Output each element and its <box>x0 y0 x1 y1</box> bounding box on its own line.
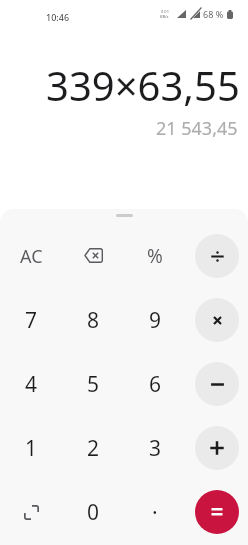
button[interactable]: 4 <box>0 352 62 416</box>
staticText: · <box>152 498 158 527</box>
button[interactable]: % <box>124 224 186 288</box>
button[interactable]: 7 <box>0 288 62 352</box>
button[interactable]: 6 <box>124 352 186 416</box>
button[interactable]: 3 <box>124 416 186 480</box>
button[interactable]: 8 <box>62 288 124 352</box>
staticText: 2 <box>87 434 100 463</box>
staticText: 68 % <box>203 8 224 20</box>
staticText: 8 <box>87 306 100 335</box>
button[interactable]: 9 <box>124 288 186 352</box>
button[interactable]: Backspace <box>62 224 124 288</box>
button[interactable]: Plus <box>195 426 239 470</box>
button[interactable]: 5 <box>62 352 124 416</box>
staticText: KB/s <box>160 14 169 19</box>
staticText: 9 <box>149 306 162 335</box>
staticText: 0.01 <box>161 9 169 14</box>
button[interactable]: 2 <box>62 416 124 480</box>
button[interactable]: Expand <box>0 480 62 544</box>
staticText: 7 <box>25 306 38 335</box>
staticText: 3 <box>149 434 162 463</box>
staticText: 10:46 <box>46 11 70 23</box>
button[interactable]: Multiply <box>195 298 239 342</box>
button[interactable]: Equals <box>195 490 239 534</box>
button[interactable]: 0 <box>62 480 124 544</box>
button[interactable]: Divide <box>195 234 239 278</box>
staticText: % <box>147 243 163 269</box>
button[interactable]: 1 <box>0 416 62 480</box>
staticText: 339×63,55 <box>46 58 240 112</box>
button[interactable]: Minus <box>195 362 239 406</box>
staticText: 5 <box>87 370 100 399</box>
staticText: AC <box>20 244 43 269</box>
staticText: 4 <box>25 370 38 399</box>
button[interactable]: AC <box>0 224 62 288</box>
staticText: 6 <box>149 370 162 399</box>
staticText: 21 543,45 <box>156 116 238 141</box>
button[interactable]: · <box>124 480 186 544</box>
staticText: 1 <box>25 434 38 463</box>
staticText: 0 <box>87 498 100 527</box>
